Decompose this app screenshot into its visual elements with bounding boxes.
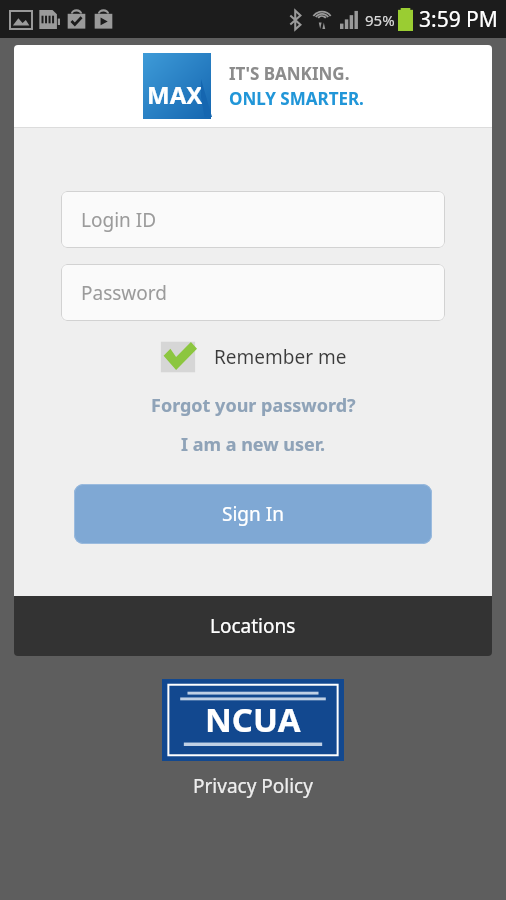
staticText: Login ID	[81, 207, 157, 233]
staticText: I am a new user.	[181, 432, 326, 457]
button[interactable]: Privacy Policy	[189, 769, 317, 803]
staticText: NCUA	[205, 697, 301, 742]
staticText: MAX	[147, 78, 203, 111]
staticText: Forgot your password?	[151, 393, 356, 418]
staticText: Privacy Policy	[193, 773, 313, 799]
button[interactable]: Login ID	[61, 191, 445, 248]
button[interactable]: Forgot your password?	[145, 392, 362, 419]
staticText: Password	[81, 280, 167, 306]
button[interactable]: Password	[61, 264, 445, 321]
staticText: 95%	[365, 10, 395, 30]
button[interactable]: Sign In	[74, 484, 432, 544]
button[interactable]: I am a new user.	[175, 431, 332, 458]
staticText: Locations	[210, 613, 296, 639]
button[interactable]: NCUA insured	[162, 679, 344, 761]
staticText: ONLY SMARTER.	[229, 87, 364, 110]
staticText: Sign In	[222, 501, 284, 527]
button[interactable]: Remember me	[159, 340, 347, 374]
staticText: IT'S BANKING.	[229, 62, 350, 85]
button[interactable]: Locations	[14, 596, 492, 656]
staticText: Remember me	[214, 344, 347, 370]
staticText: 3:59 PM	[419, 5, 498, 34]
